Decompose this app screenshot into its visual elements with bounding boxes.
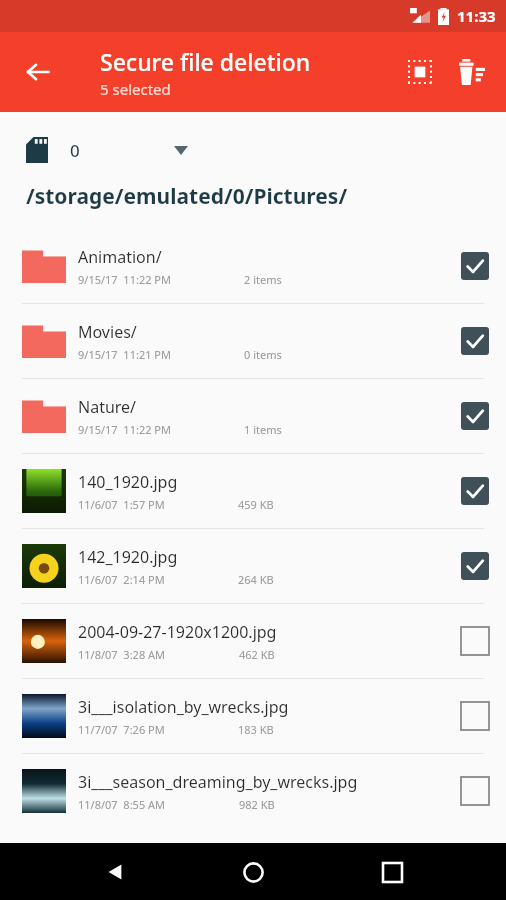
- staticText: 264 KB: [238, 572, 274, 587]
- staticText: 9/15/17 11:22 PM: [78, 272, 171, 287]
- button[interactable]: 3i___isolation_by_wrecks.jpg: [0, 679, 506, 753]
- button[interactable]: Home: [229, 848, 277, 896]
- staticText: Secure file deletion: [100, 46, 311, 77]
- staticText: 11/8/07 8:55 AM: [78, 797, 166, 812]
- button[interactable]: 142_1920.jpg: [0, 529, 506, 603]
- staticText: 0 items: [244, 347, 282, 362]
- button[interactable]: 3i___season_dreaming_by_wrecks.jpg: [0, 754, 506, 828]
- staticText: 0: [70, 139, 80, 162]
- staticText: 5 selected: [100, 79, 171, 99]
- staticText: 982 KB: [239, 797, 275, 812]
- button[interactable]: Selected: [444, 454, 506, 528]
- button[interactable]: Not selected: [444, 604, 506, 678]
- staticText: 459 KB: [238, 497, 274, 512]
- staticText: 11:33: [457, 6, 496, 26]
- staticText: 183 KB: [238, 722, 274, 737]
- staticText: 11/8/07 3:28 AM: [78, 647, 166, 662]
- button[interactable]: Recents: [368, 848, 416, 896]
- staticText: 2004-09-27-1920x1200.jpg: [78, 621, 277, 643]
- staticText: 9/15/17 11:22 PM: [78, 422, 171, 437]
- staticText: 462 KB: [239, 647, 275, 662]
- staticText: 3i___season_dreaming_by_wrecks.jpg: [78, 771, 358, 793]
- staticText: 11/6/07 1:57 PM: [78, 497, 165, 512]
- button[interactable]: Nature/: [0, 379, 506, 453]
- button[interactable]: Delete: [446, 46, 498, 98]
- button[interactable]: Selected: [444, 529, 506, 603]
- button[interactable]: Select all: [394, 46, 446, 98]
- button[interactable]: Animation/: [0, 229, 506, 303]
- button[interactable]: Back: [91, 848, 139, 896]
- staticText: 9/15/17 11:21 PM: [78, 347, 171, 362]
- staticText: 142_1920.jpg: [78, 546, 178, 568]
- staticText: Nature/: [78, 396, 137, 418]
- staticText: 2 items: [244, 272, 282, 287]
- button[interactable]: 0: [26, 130, 188, 170]
- button[interactable]: Not selected: [444, 679, 506, 753]
- staticText: 3i___isolation_by_wrecks.jpg: [78, 696, 289, 718]
- button[interactable]: 2004-09-27-1920x1200.jpg: [0, 604, 506, 678]
- button[interactable]: Movies/: [0, 304, 506, 378]
- staticText: 140_1920.jpg: [78, 471, 178, 493]
- button[interactable]: 140_1920.jpg: [0, 454, 506, 528]
- staticText: 11/6/07 2:14 PM: [78, 572, 165, 587]
- staticText: Animation/: [78, 246, 162, 268]
- button[interactable]: Selected: [444, 304, 506, 378]
- button[interactable]: Back: [14, 48, 62, 96]
- staticText: 11/7/07 7:26 PM: [78, 722, 165, 737]
- staticText: 1 items: [244, 422, 282, 437]
- staticText: /storage/emulated/0/Pictures/: [26, 182, 348, 211]
- staticText: Movies/: [78, 321, 137, 343]
- button[interactable]: Selected: [444, 229, 506, 303]
- button[interactable]: Selected: [444, 379, 506, 453]
- button[interactable]: Not selected: [444, 754, 506, 828]
